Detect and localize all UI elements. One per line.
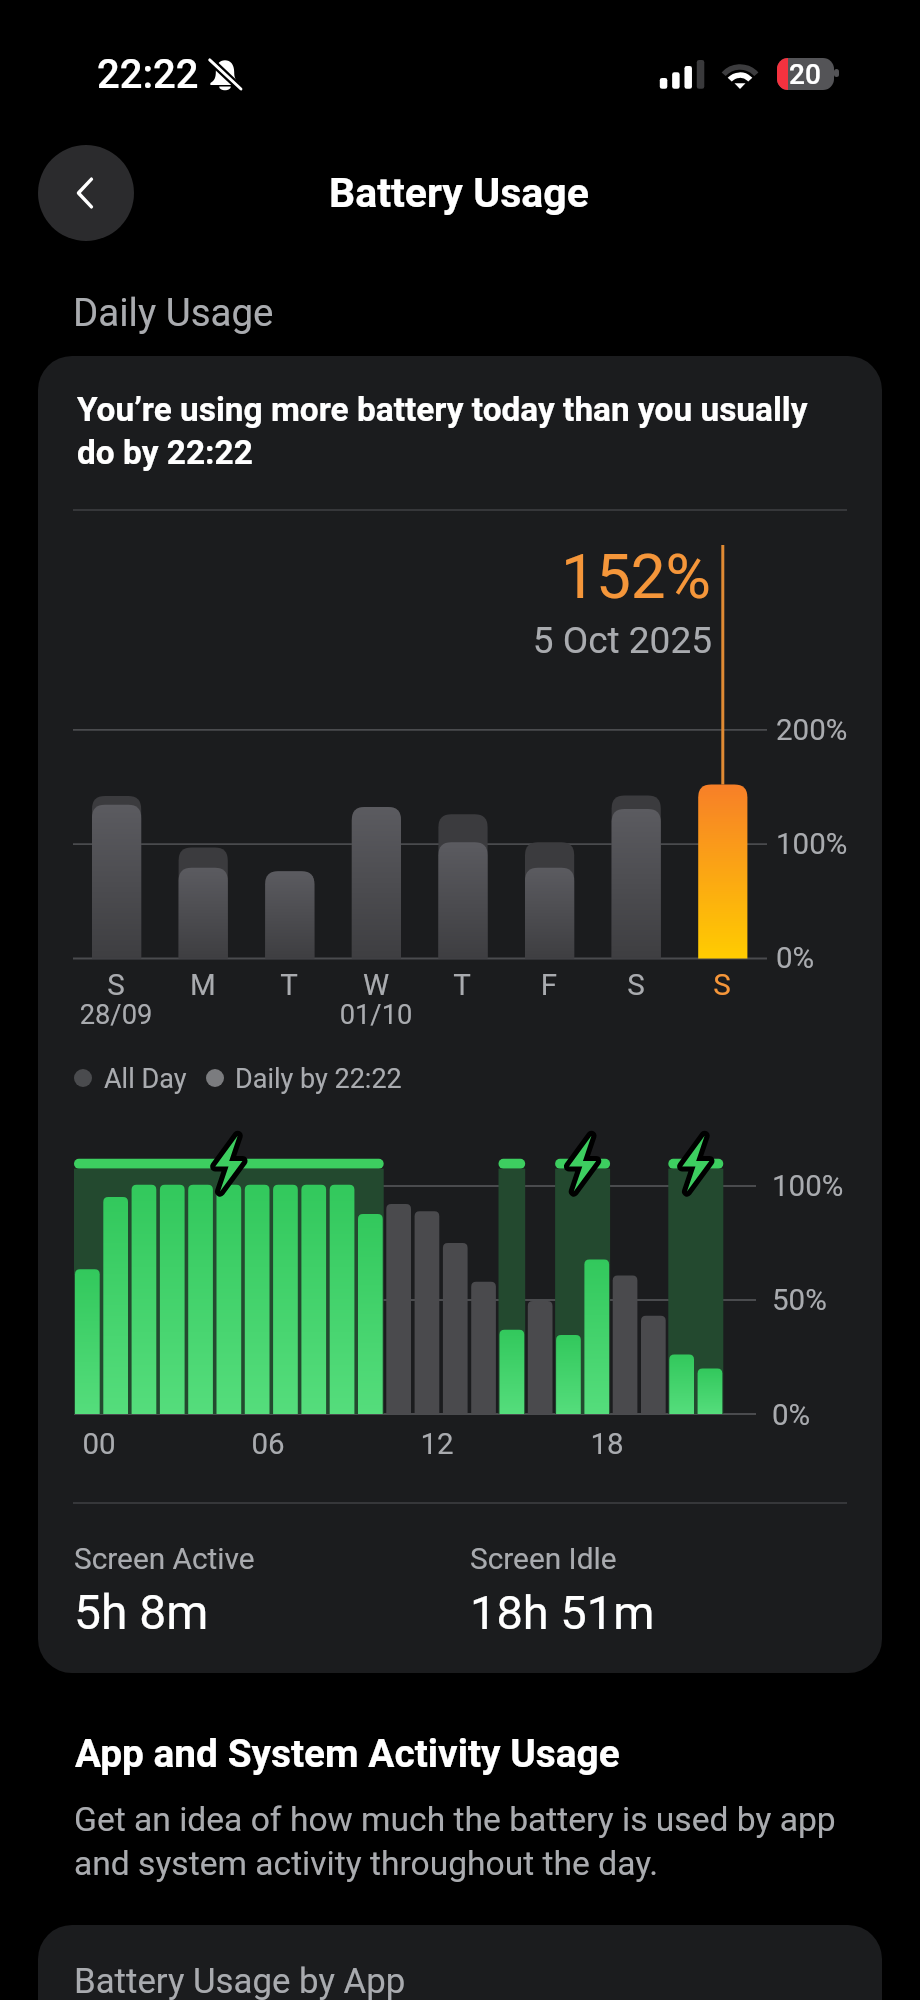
- staticText: App and System Activity Usage: [75, 1731, 620, 1776]
- staticText: M: [163, 968, 243, 1003]
- staticText: 100%: [776, 827, 848, 862]
- staticText: F: [509, 968, 589, 1003]
- staticText: Daily by 22:22: [235, 1063, 402, 1095]
- staticText: Get an idea of how much the battery is u…: [74, 1800, 864, 1884]
- staticText: T: [422, 968, 502, 1003]
- staticText: 00: [49, 1427, 149, 1462]
- staticText: 20: [789, 58, 821, 90]
- staticText: S: [76, 968, 156, 1003]
- button[interactable]: Back: [38, 145, 134, 241]
- staticText: 28/09: [56, 999, 176, 1031]
- staticText: 12: [387, 1427, 487, 1462]
- staticText: 50%: [772, 1283, 827, 1318]
- staticText: W: [336, 968, 416, 1003]
- staticText: 22:22: [97, 51, 199, 98]
- staticText: T: [249, 968, 329, 1003]
- staticText: You’re using more battery today than you…: [77, 390, 847, 472]
- staticText: Daily Usage: [73, 290, 274, 335]
- staticText: S: [682, 968, 762, 1003]
- staticText: 06: [218, 1427, 318, 1462]
- staticText: 18: [557, 1427, 657, 1462]
- staticText: All Day: [104, 1063, 187, 1095]
- staticText: 5 Oct 2025: [458, 619, 712, 662]
- staticText: 18h 51m: [470, 1585, 655, 1640]
- staticText: 200%: [776, 713, 848, 748]
- staticText: Battery Usage by App: [74, 1961, 406, 2000]
- staticText: 100%: [772, 1169, 844, 1204]
- staticText: 5h 8m: [74, 1584, 209, 1640]
- staticText: S: [596, 968, 676, 1003]
- staticText: 152%: [523, 540, 711, 613]
- staticText: Screen Active: [74, 1541, 255, 1576]
- staticText: 0%: [772, 1398, 811, 1433]
- staticText: Battery Usage: [329, 169, 589, 217]
- staticText: Screen Idle: [470, 1541, 617, 1576]
- staticText: 01/10: [316, 999, 436, 1031]
- staticText: 0%: [776, 941, 815, 976]
- button[interactable]: Battery Usage by App: [38, 1925, 882, 2000]
